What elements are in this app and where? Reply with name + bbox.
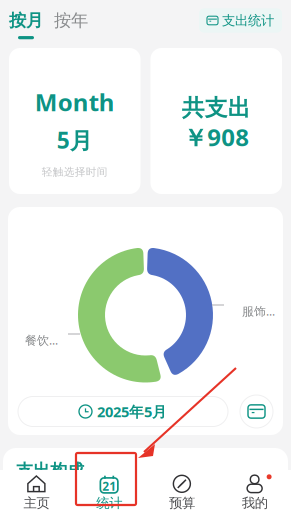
staticText: 21 bbox=[102, 478, 116, 494]
staticText: 餐饮... bbox=[25, 332, 58, 348]
staticText: 我的 bbox=[242, 495, 268, 511]
button[interactable]: 按月 bbox=[9, 10, 43, 39]
staticText: 轻触选择时间 bbox=[42, 165, 108, 178]
staticText: 5月 bbox=[57, 125, 93, 155]
staticText: 主页 bbox=[23, 495, 49, 511]
staticText: 支出构成 bbox=[16, 460, 84, 481]
button[interactable]: 21 bbox=[73, 473, 146, 513]
staticText: ￥908 bbox=[183, 121, 249, 153]
staticText: 按月 bbox=[9, 10, 43, 31]
button[interactable]: 2025年5月 bbox=[18, 396, 228, 426]
staticText: 服饰... bbox=[242, 303, 275, 319]
button[interactable]: 按年 bbox=[43, 10, 88, 39]
staticText: 支出统计 bbox=[222, 12, 274, 29]
button[interactable]: 我的 bbox=[218, 473, 291, 513]
staticText: Month bbox=[35, 86, 115, 118]
button[interactable]: 主页 bbox=[0, 473, 73, 513]
staticText: 预算 bbox=[169, 495, 195, 511]
button[interactable]: 支出统计 bbox=[199, 8, 282, 33]
staticText: 统计 bbox=[96, 495, 122, 511]
staticText: 2025年5月 bbox=[97, 402, 167, 421]
staticText: 共支出 bbox=[182, 94, 251, 122]
button[interactable]: 预算 bbox=[145, 473, 218, 513]
button[interactable]: 账单记录 bbox=[240, 395, 273, 428]
staticText: 按年 bbox=[54, 10, 88, 31]
